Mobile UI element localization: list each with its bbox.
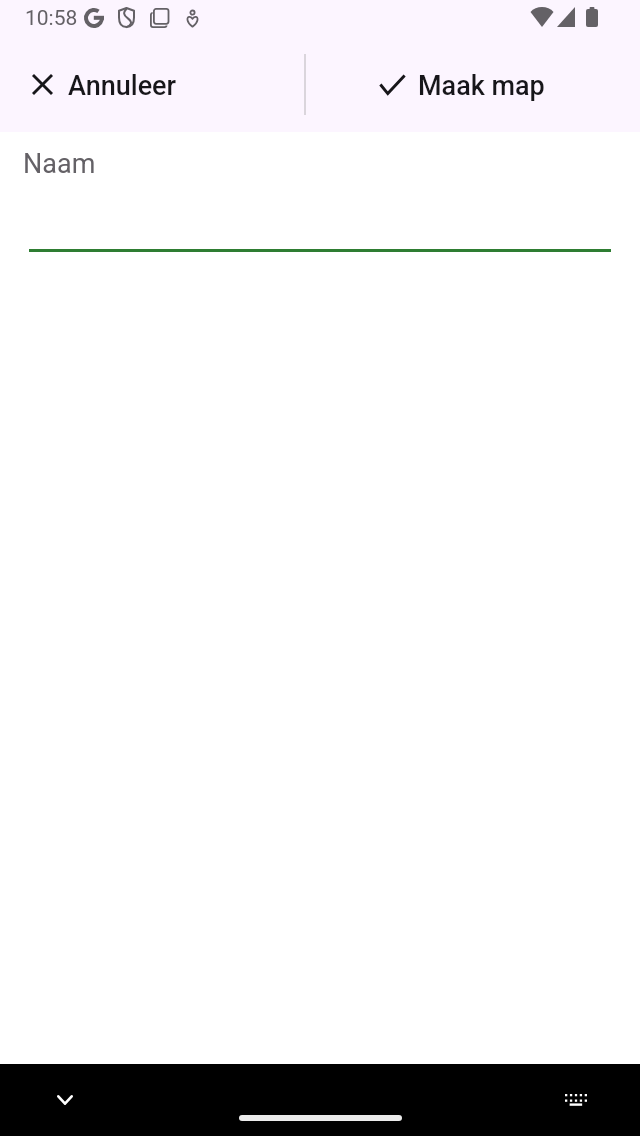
button[interactable]: Hide keyboard (40, 1064, 90, 1136)
staticText: Annuleer (68, 70, 177, 102)
button[interactable]: Maak map (306, 46, 640, 132)
staticText: Maak map (418, 70, 545, 102)
button[interactable]: Switch keyboard (548, 1064, 604, 1136)
staticText: Naam (23, 148, 96, 180)
staticText: 10:58 (25, 6, 78, 31)
button[interactable]: Annuleer (0, 46, 304, 132)
button[interactable]: Naam (0, 132, 640, 254)
